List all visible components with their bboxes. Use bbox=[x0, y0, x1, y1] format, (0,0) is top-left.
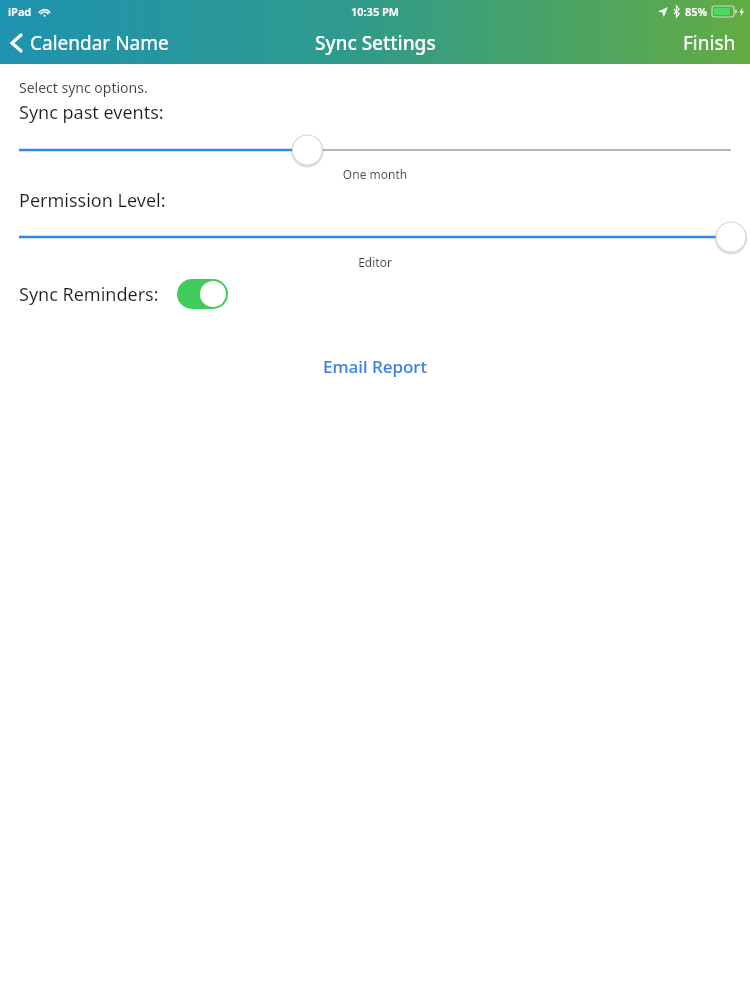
button[interactable]: Email Report bbox=[307, 349, 444, 384]
staticText: 10:35 PM bbox=[351, 4, 400, 19]
staticText: One month bbox=[0, 166, 750, 182]
staticText: Select sync options. bbox=[19, 78, 148, 97]
staticText: Finish bbox=[683, 30, 736, 56]
staticText: Calendar Name bbox=[30, 30, 169, 56]
button[interactable]: Calendar Name bbox=[0, 24, 181, 62]
staticText: Editor bbox=[0, 254, 750, 270]
staticText: Email Report bbox=[323, 355, 428, 378]
staticText: 85% bbox=[685, 4, 708, 19]
button[interactable]: Slider bbox=[0, 132, 750, 168]
button[interactable]: Slider bbox=[0, 219, 750, 255]
button[interactable]: Finish bbox=[669, 22, 750, 64]
staticText: Sync Settings bbox=[315, 30, 436, 56]
staticText: Sync past events: bbox=[19, 100, 164, 125]
staticText: Sync Reminders: bbox=[19, 282, 159, 307]
staticText: Permission Level: bbox=[19, 188, 166, 213]
button[interactable]: Sync Reminders toggle bbox=[177, 279, 228, 309]
staticText: iPad bbox=[8, 4, 32, 19]
